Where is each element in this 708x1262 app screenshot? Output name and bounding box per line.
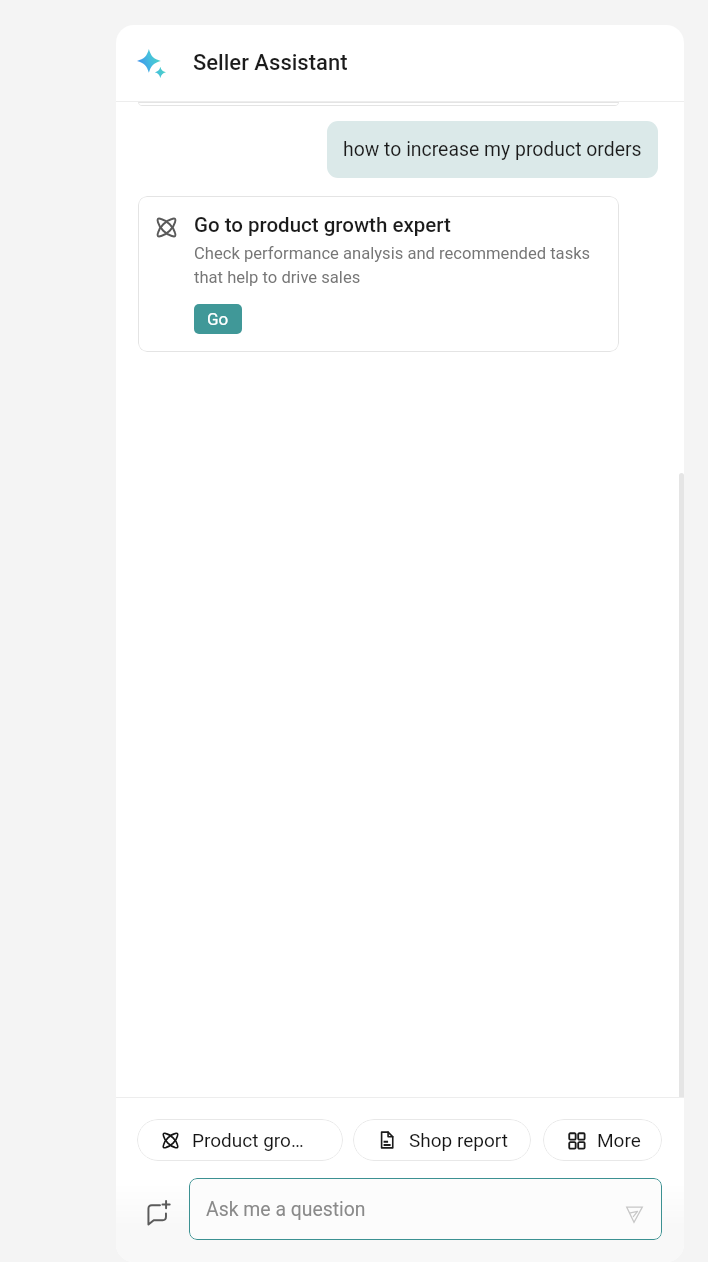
staticText: More [597, 1129, 641, 1151]
staticText: Go to product growth expert [194, 213, 451, 237]
staticText: Go [207, 309, 229, 329]
button[interactable]: Send [618, 1194, 648, 1224]
staticText: Product gro… [192, 1129, 304, 1151]
staticText: Check performance analysis and recommend… [194, 244, 603, 287]
staticText: Shop report [409, 1129, 508, 1151]
button[interactable]: Go [194, 304, 242, 334]
staticText: how to increase my product orders [343, 138, 642, 161]
button[interactable]: Shop report [353, 1119, 531, 1161]
staticText: Seller Assistant [193, 50, 348, 76]
button[interactable]: Product gro… [137, 1119, 343, 1161]
button[interactable]: New chat [133, 1187, 177, 1231]
button[interactable]: how to increase my product orders [327, 121, 658, 178]
button[interactable]: Ask me a question [189, 1178, 662, 1240]
other: Assistant [137, 49, 166, 78]
staticText: Ask me a question [206, 1198, 366, 1221]
button[interactable]: Go to product growth expert [138, 196, 619, 352]
button[interactable]: More [543, 1119, 662, 1161]
